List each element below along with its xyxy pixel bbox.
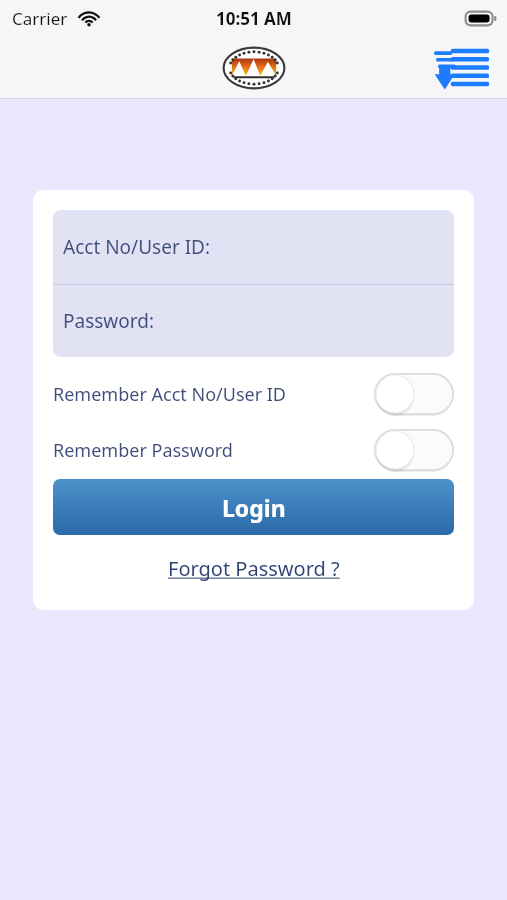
- button[interactable]: Forgot Password ?: [160, 551, 348, 586]
- staticText: Remember Password: [53, 438, 374, 463]
- staticText: Acct No/User ID:: [63, 234, 211, 260]
- staticText: Carrier: [12, 7, 68, 30]
- button[interactable]: Login: [53, 479, 454, 535]
- button[interactable]: Menu: [433, 46, 489, 90]
- staticText: 10:51 AM: [216, 7, 292, 30]
- button[interactable]: Remember Password: [53, 429, 454, 471]
- staticText: Password:: [63, 308, 155, 334]
- button[interactable]: Password:: [53, 285, 454, 357]
- button[interactable]: Remember Acct No/User ID: [53, 373, 454, 415]
- button[interactable]: Acct No/User ID:: [53, 210, 454, 284]
- staticText: Login: [222, 492, 286, 523]
- staticText: Remember Acct No/User ID: [53, 382, 374, 407]
- staticText: Forgot Password ?: [168, 555, 340, 582]
- button[interactable]: Bank logo: [223, 47, 285, 89]
